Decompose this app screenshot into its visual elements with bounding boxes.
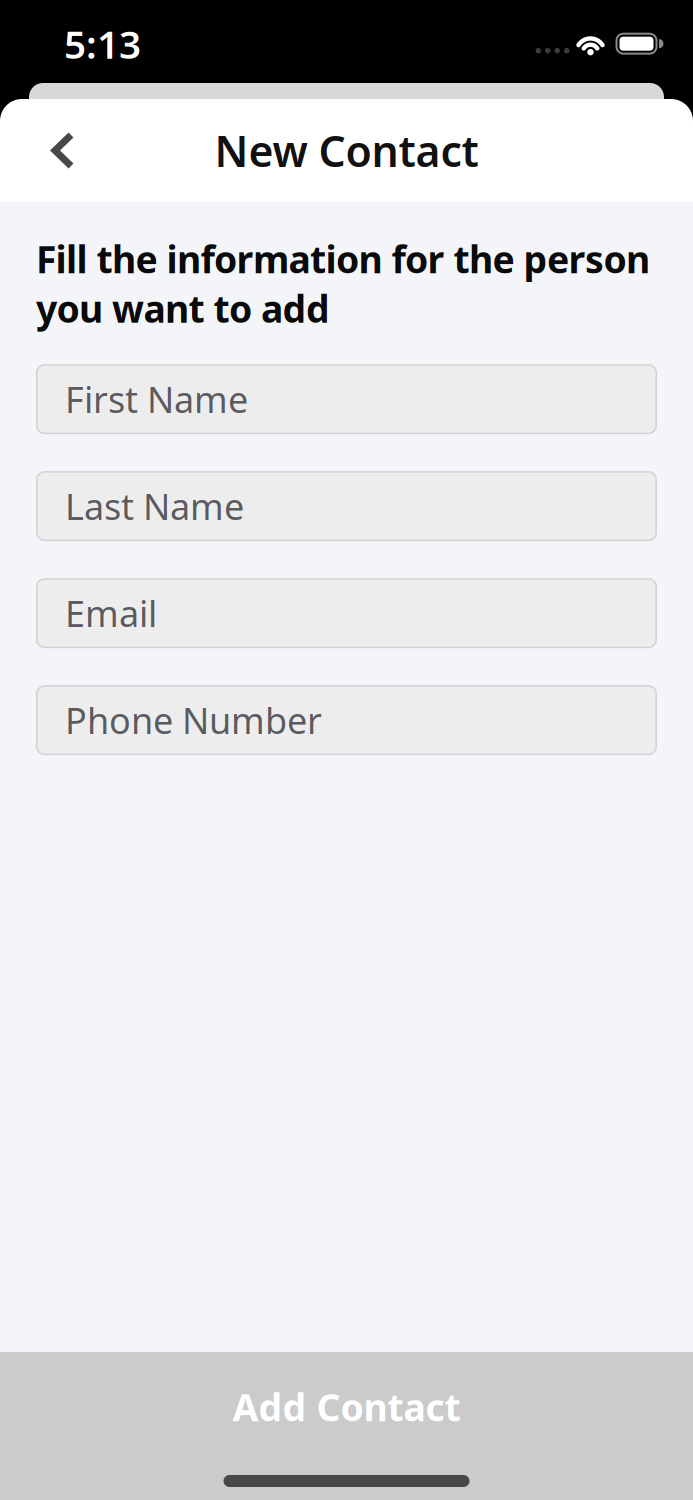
button[interactable]: First Name xyxy=(36,364,657,434)
staticText: First Name xyxy=(65,375,248,423)
button[interactable]: Email xyxy=(36,578,657,648)
staticText: 5:13 xyxy=(64,18,141,69)
staticText: Add Contact xyxy=(232,1382,460,1432)
button[interactable]: Last Name xyxy=(36,471,657,541)
button[interactable]: Phone Number xyxy=(36,685,657,755)
staticText: New Contact xyxy=(214,122,478,179)
staticText: Fill the information for the person you … xyxy=(36,234,650,333)
staticText: Phone Number xyxy=(65,696,322,744)
button[interactable]: Back xyxy=(0,123,75,177)
staticText: Last Name xyxy=(65,482,244,530)
staticText: Email xyxy=(65,589,157,637)
button[interactable]: Add Contact xyxy=(0,1352,693,1448)
